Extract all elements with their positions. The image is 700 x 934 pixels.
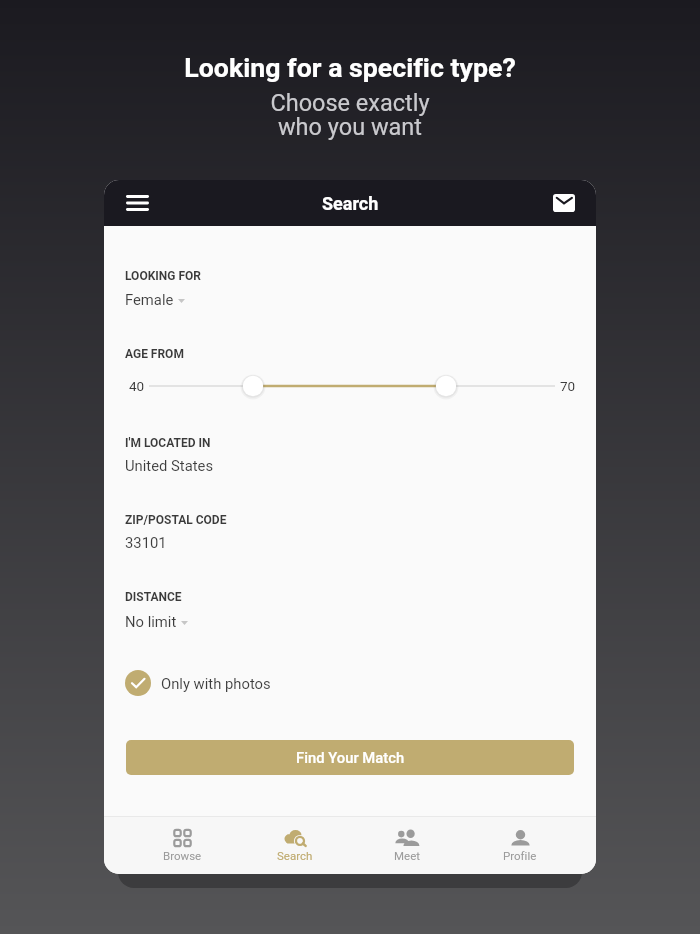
button[interactable]: Search <box>238 817 350 874</box>
staticText: Choose exactly who you want <box>270 89 430 141</box>
staticText: Browse <box>163 849 202 862</box>
staticText: AGE FROM <box>125 347 184 361</box>
staticText: Looking for a specific type? <box>184 52 516 83</box>
staticText: 40 <box>129 378 145 394</box>
button[interactable]: Age range 40 to 70 <box>125 373 575 399</box>
button[interactable]: Messages <box>540 180 588 226</box>
staticText: Search <box>322 193 379 214</box>
button[interactable]: Only with photos <box>125 670 271 696</box>
staticText: Female <box>125 291 174 308</box>
staticText: No limit <box>125 613 177 630</box>
staticText: Profile <box>503 849 537 862</box>
staticText: Meet <box>394 849 420 862</box>
staticText: I'M LOCATED IN <box>125 436 211 450</box>
button[interactable]: Country: United States <box>125 457 214 474</box>
staticText: ZIP/POSTAL CODE <box>125 513 227 527</box>
staticText: LOOKING FOR <box>125 269 201 283</box>
button[interactable]: Find Your Match <box>126 740 574 775</box>
button[interactable]: Distance: No limit <box>125 613 188 630</box>
button[interactable]: Meet <box>350 817 462 874</box>
staticText: 33101 <box>125 534 167 551</box>
staticText: 70 <box>560 378 576 394</box>
button[interactable]: Profile <box>463 817 575 874</box>
staticText: Find Your Match <box>296 749 405 766</box>
staticText: DISTANCE <box>125 590 182 604</box>
staticText: Only with photos <box>161 675 271 692</box>
button[interactable]: Open navigation menu <box>113 180 161 226</box>
staticText: United States <box>125 457 214 474</box>
button[interactable]: ZIP code 33101 <box>125 534 167 551</box>
staticText: Search <box>277 849 313 862</box>
button[interactable]: Browse <box>125 817 237 874</box>
button[interactable]: Looking for: Female <box>125 291 185 308</box>
